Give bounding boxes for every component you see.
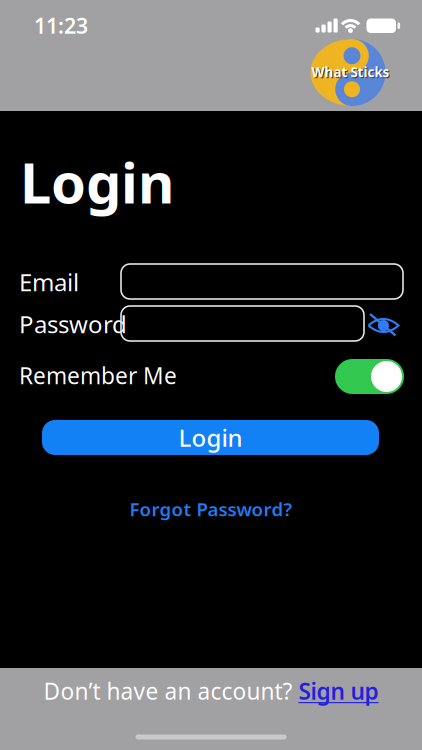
staticText: Remember Me	[19, 360, 177, 391]
staticText: What Sticks	[312, 64, 390, 82]
staticText: Don’t have an account?	[43, 676, 298, 706]
button[interactable]: Remember Me	[335, 359, 404, 394]
staticText: What Sticks	[311, 63, 389, 81]
staticText: Password	[19, 308, 127, 340]
staticText: Sign up	[298, 676, 378, 706]
staticText: Login	[178, 422, 242, 453]
staticText: Forgot Password?	[129, 497, 292, 521]
staticText: Email	[19, 266, 79, 298]
button[interactable]: Login	[42, 420, 379, 455]
button[interactable]: Password	[121, 306, 364, 341]
button[interactable]: Show password	[366, 310, 402, 340]
button[interactable]: Sign up	[298, 676, 378, 706]
staticText: 11:23	[34, 11, 88, 40]
button[interactable]: Forgot Password?	[129, 497, 292, 521]
button[interactable]: Email	[121, 264, 403, 299]
staticText: Login	[20, 144, 174, 219]
